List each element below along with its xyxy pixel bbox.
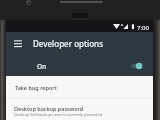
button[interactable]: Open navigation menu: [14, 40, 22, 47]
staticText: Desktop full backups aren't currently pr…: [14, 112, 103, 117]
button[interactable]: Desktop backup password: [6, 99, 153, 120]
staticText: On: [37, 62, 47, 71]
staticText: Desktop backup password: [14, 105, 84, 112]
button[interactable]: On: [6, 54, 153, 76]
staticText: Take bug report: [15, 84, 57, 91]
staticText: 7:00: [137, 24, 149, 32]
button[interactable]: Take bug report: [6, 76, 153, 98]
staticText: Developer options: [33, 38, 104, 49]
button[interactable]: Developer options: [6, 32, 153, 54]
